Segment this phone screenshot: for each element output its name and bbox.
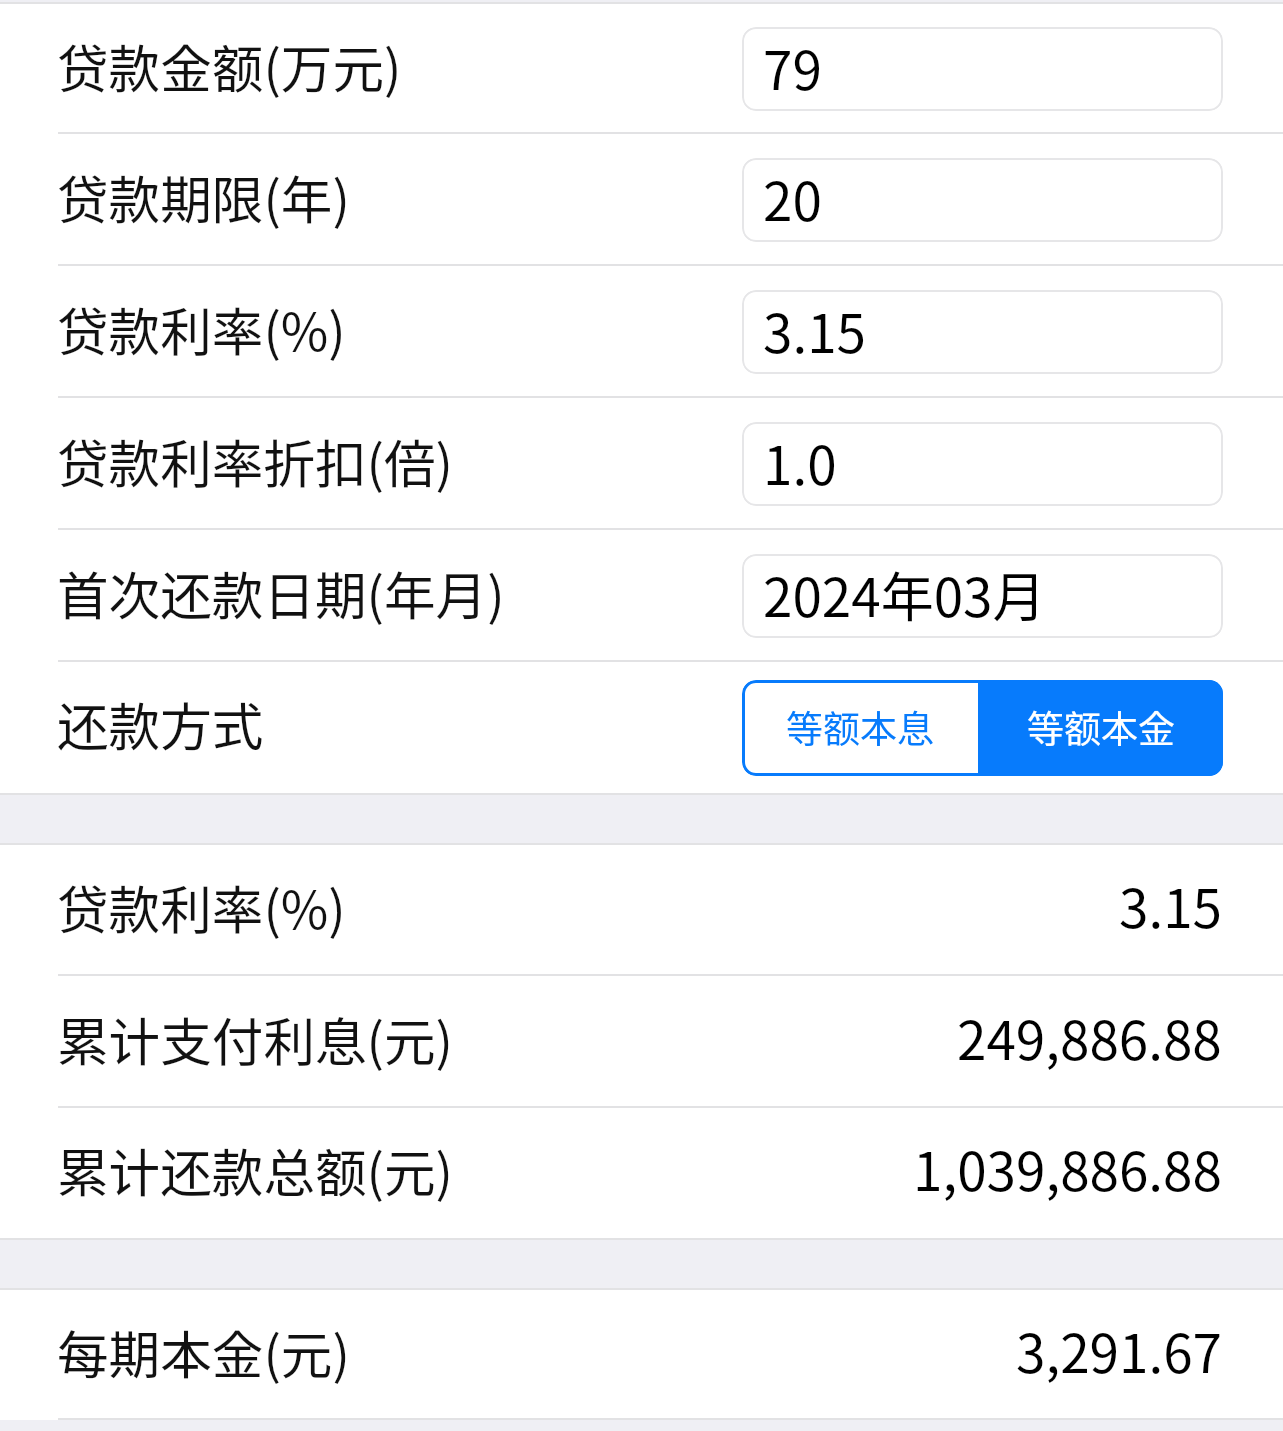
staticText: 贷款利率(%) [57,869,346,944]
button[interactable]: 1.0 [742,422,1223,506]
button[interactable]: 等额本息 [742,680,978,776]
staticText: 累计支付利息(元) [57,1001,454,1076]
staticText: 首次还款日期(年月) [57,555,505,630]
staticText: 3,291.67 [1016,1312,1222,1389]
staticText: 贷款期限(年) [57,159,350,234]
staticText: 累计还款总额(元) [57,1132,454,1207]
staticText: 等额本息 [786,700,934,754]
staticText: 还款方式 [57,686,264,761]
staticText: 等额本金 [1027,700,1175,754]
button[interactable]: 累计还款总额(元) [0,1108,1283,1238]
staticText: 贷款利率(%) [57,291,346,366]
staticText: 2024年03月 [763,556,1046,633]
staticText: 20 [763,160,822,237]
button[interactable]: 等额本金 [978,680,1223,776]
staticText: 3.15 [1119,867,1222,944]
button[interactable]: 贷款利率折扣(倍) [0,398,1283,530]
button[interactable]: 3.15 [742,290,1223,374]
button[interactable]: 79 [742,27,1223,111]
staticText: 贷款金额(万元) [57,28,402,103]
button[interactable]: 贷款利率(%) [0,266,1283,398]
button[interactable]: 首次还款日期(年月) [0,530,1283,662]
staticText: 每期本金(元) [57,1314,350,1389]
staticText: 249,886.88 [957,999,1222,1076]
button[interactable]: 20 [742,158,1223,242]
button[interactable]: 贷款利率(%) [0,845,1283,976]
button[interactable]: 贷款期限(年) [0,134,1283,266]
button[interactable]: 2024年03月 [742,554,1223,638]
button[interactable]: 每期本金(元) [0,1290,1283,1420]
staticText: 贷款利率折扣(倍) [57,423,454,498]
staticText: 79 [763,29,822,106]
button[interactable]: 累计支付利息(元) [0,976,1283,1108]
staticText: 1,039,886.88 [913,1130,1222,1207]
staticText: 1.0 [763,424,837,501]
button[interactable]: 贷款金额(万元) [0,4,1283,134]
staticText: 3.15 [763,292,866,369]
